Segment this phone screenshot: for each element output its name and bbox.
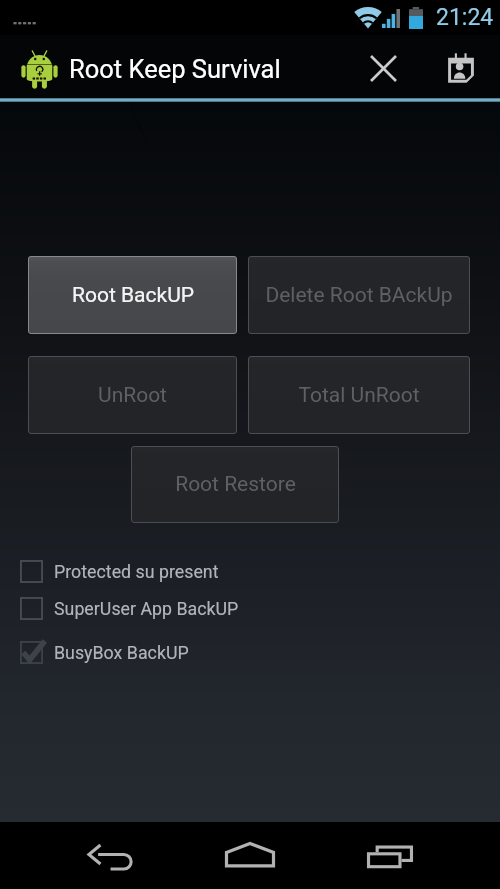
staticText: UnRoot — [98, 383, 167, 408]
button[interactable]: Back — [41, 822, 181, 889]
staticText: Total UnRoot — [298, 383, 420, 408]
button[interactable]: BusyBox BackUP — [20, 640, 440, 664]
staticText: Root Keep Survival — [69, 54, 281, 84]
button[interactable]: Root Restore — [131, 446, 339, 523]
staticText: Protected su present — [54, 561, 219, 582]
staticText: BusyBox BackUP — [54, 642, 189, 663]
staticText: Root BackUP — [72, 283, 194, 308]
staticText: Delete Root BAckUp — [265, 283, 453, 308]
staticText: Root Restore — [175, 472, 296, 497]
button[interactable]: SuperUser App BackUP — [20, 596, 440, 620]
staticText: 21:24 — [436, 4, 494, 31]
button[interactable]: Recents — [320, 822, 460, 889]
button[interactable]: Total UnRoot — [248, 356, 470, 434]
button[interactable]: UnRoot — [28, 356, 237, 434]
button[interactable]: Home — [180, 822, 320, 889]
staticText: SuperUser App BackUP — [54, 598, 239, 619]
button[interactable]: Root BackUP — [28, 256, 237, 334]
button[interactable]: Contacts — [422, 35, 500, 98]
button[interactable]: Close — [345, 35, 422, 98]
button[interactable]: Delete Root BAckUp — [248, 256, 470, 334]
button[interactable]: Protected su present — [20, 559, 440, 583]
